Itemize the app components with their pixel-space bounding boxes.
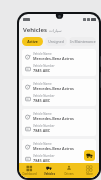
staticText: Unsigned — [48, 39, 64, 44]
button[interactable]: Drivers — [59, 163, 79, 178]
staticText: Mercedes-Benz Actros — [33, 116, 74, 121]
button[interactable]: Vehicle Name — [22, 169, 96, 178]
button[interactable]: Vehicles — [39, 163, 59, 178]
staticText: In Maintenance — [70, 39, 96, 44]
button[interactable]: Vehicle Name — [22, 79, 96, 106]
button[interactable]: Vehicle Name — [22, 49, 96, 76]
staticText: More — [86, 172, 93, 176]
staticText: Mercedes-Benz Actros — [33, 56, 74, 61]
staticText: Vehicle Number — [33, 64, 55, 68]
staticText: Vehicle Name — [33, 172, 52, 175]
button[interactable]: More — [79, 163, 99, 178]
button[interactable]: Unsigned — [45, 37, 67, 46]
staticText: Vehicle Number — [33, 154, 55, 158]
staticText: Vehicle Name — [33, 52, 52, 56]
staticText: سيارات — [49, 28, 62, 33]
staticText: 7845 ABC — [33, 128, 51, 133]
staticText: Vehicle Name — [33, 112, 52, 116]
staticText: Vehicle Name — [33, 82, 52, 86]
staticText: Mercedes-Benz Actros — [33, 146, 74, 151]
button[interactable]: Dashboard — [19, 163, 39, 178]
staticText: Vehicle Number — [33, 124, 55, 128]
staticText: Active — [27, 39, 38, 44]
button[interactable]: Vehicle Name — [22, 139, 96, 166]
button[interactable]: Vehicle Name — [22, 109, 96, 136]
button[interactable]: Add vehicle — [84, 150, 95, 161]
staticText: 7845 ABC — [33, 68, 51, 73]
staticText: 7845 ABC — [33, 158, 51, 163]
staticText: Vehicle Name — [33, 142, 52, 146]
staticText: 7845 ABC — [33, 98, 51, 103]
staticText: Vehicles — [44, 172, 55, 176]
staticText: Vehicle Number — [33, 94, 55, 98]
staticText: Mercedes-Benz Actros — [33, 86, 74, 91]
button[interactable]: In Maintenance — [69, 37, 96, 46]
staticText: Dashboard — [22, 172, 37, 176]
staticText: Drivers — [64, 172, 74, 176]
button[interactable]: Active — [22, 37, 43, 46]
staticText: Vehicles — [23, 26, 47, 34]
